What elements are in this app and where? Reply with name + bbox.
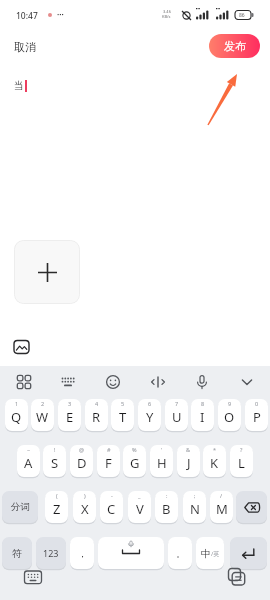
staticText: ' <box>161 446 163 453</box>
button[interactable] <box>238 373 256 391</box>
staticText: ~ <box>27 446 31 453</box>
button[interactable] <box>236 491 267 523</box>
staticText: - <box>111 492 113 499</box>
button[interactable]: G <box>123 445 146 477</box>
staticText: ， <box>78 548 87 559</box>
button[interactable] <box>104 373 122 391</box>
staticText: Q <box>11 408 22 426</box>
button[interactable] <box>98 537 164 569</box>
staticText: 9 <box>228 400 232 407</box>
button[interactable] <box>149 373 167 391</box>
staticText: _ <box>138 492 141 499</box>
staticText: L <box>238 454 245 472</box>
staticText: 0 <box>255 400 259 407</box>
staticText: 。 <box>176 548 185 559</box>
button[interactable]: S <box>43 445 66 477</box>
button[interactable]: R <box>85 399 108 431</box>
button[interactable]: 123 <box>36 537 66 569</box>
button[interactable]: K <box>203 445 226 477</box>
button[interactable]: I <box>191 399 214 431</box>
button[interactable] <box>230 537 267 569</box>
button[interactable]: V <box>128 491 151 523</box>
staticText: ) <box>84 492 86 499</box>
button[interactable] <box>24 568 43 587</box>
staticText: 1 <box>15 400 19 407</box>
staticText: 分词 <box>11 501 30 513</box>
staticText: 5 <box>121 400 125 407</box>
staticText: ? <box>240 446 243 453</box>
staticText: # <box>107 446 111 453</box>
staticText: 3.46 <box>163 9 171 14</box>
staticText: 符 <box>12 547 22 560</box>
staticText: 中 <box>201 547 211 560</box>
button[interactable] <box>14 240 80 304</box>
staticText: 10:47 <box>16 10 38 22</box>
staticText: * <box>213 446 217 453</box>
staticText: B <box>162 500 171 518</box>
button[interactable]: ， <box>70 537 94 569</box>
button[interactable] <box>59 373 77 391</box>
button[interactable]: 取消 <box>8 38 42 56</box>
staticText: M <box>216 500 228 518</box>
staticText: 8 <box>201 400 205 407</box>
button[interactable]: C <box>100 491 123 523</box>
button[interactable]: 中 <box>196 537 224 569</box>
staticText: G <box>130 454 140 472</box>
button[interactable]: E <box>58 399 81 431</box>
staticText: F <box>105 454 112 472</box>
button[interactable]: Q <box>5 399 28 431</box>
button[interactable]: T <box>111 399 134 431</box>
staticText: T <box>119 408 127 426</box>
button[interactable]: B <box>155 491 178 523</box>
button[interactable]: H <box>150 445 173 477</box>
button[interactable]: F <box>97 445 120 477</box>
staticText: 发布 <box>224 39 246 53</box>
staticText: W <box>36 408 49 426</box>
staticText: : <box>166 492 168 499</box>
staticText: V <box>136 500 144 518</box>
button[interactable]: D <box>70 445 93 477</box>
staticText: S <box>51 454 59 472</box>
staticText: U <box>172 408 182 426</box>
button[interactable]: W <box>31 399 54 431</box>
staticText: R <box>92 408 101 426</box>
button[interactable]: 分词 <box>2 491 38 523</box>
button[interactable]: N <box>183 491 206 523</box>
staticText: P <box>253 408 261 426</box>
staticText: & <box>186 446 191 453</box>
staticText: 取消 <box>14 40 36 54</box>
button[interactable]: Y <box>138 399 161 431</box>
button[interactable]: A <box>17 445 40 477</box>
button[interactable]: 发布 <box>209 34 260 58</box>
button[interactable]: U <box>165 399 188 431</box>
staticText: O <box>224 408 235 426</box>
staticText: /英 <box>211 550 220 558</box>
button[interactable]: Z <box>45 491 68 523</box>
staticText: 123 <box>43 547 59 559</box>
button[interactable] <box>227 568 246 587</box>
staticText: 86 <box>239 12 245 19</box>
staticText: @ <box>79 446 84 453</box>
button[interactable]: 符 <box>2 537 32 569</box>
button[interactable]: P <box>245 399 268 431</box>
button[interactable]: M <box>210 491 233 523</box>
staticText: C <box>107 500 116 518</box>
staticText: N <box>190 500 200 518</box>
button[interactable] <box>13 338 31 356</box>
button[interactable]: X <box>73 491 96 523</box>
staticText: 2 <box>41 400 45 407</box>
staticText: Z <box>53 500 61 518</box>
staticText: J <box>187 454 191 472</box>
button[interactable]: O <box>218 399 241 431</box>
staticText: X <box>81 500 89 518</box>
staticText: H <box>157 454 167 472</box>
staticText: ( <box>56 492 58 499</box>
button[interactable]: L <box>230 445 253 477</box>
button[interactable]: J <box>177 445 200 477</box>
button[interactable]: 。 <box>168 537 192 569</box>
button[interactable] <box>15 373 33 391</box>
staticText: 4 <box>95 400 99 407</box>
button[interactable] <box>193 373 211 391</box>
staticText: 3 <box>68 400 72 407</box>
staticText: ••• <box>57 11 64 19</box>
